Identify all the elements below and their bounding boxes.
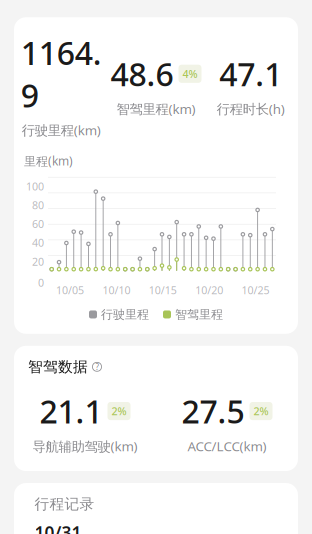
staticText: 10/15 xyxy=(149,283,177,297)
staticText: 智驾里程(km) xyxy=(116,100,195,118)
staticText: 里程(km) xyxy=(24,153,73,169)
staticText: 0 xyxy=(38,275,44,290)
staticText: 48.6 xyxy=(110,52,173,95)
staticText: 1164.9 xyxy=(21,31,102,116)
staticText: 10/20 xyxy=(195,283,223,297)
button[interactable]: About assisted driving data xyxy=(92,362,102,372)
staticText: 智驾数据 xyxy=(28,358,88,376)
staticText: 60 xyxy=(32,217,44,231)
staticText: 10/25 xyxy=(242,283,270,297)
staticText: 80 xyxy=(32,198,44,212)
staticText: 4% xyxy=(182,67,197,81)
staticText: 47.1 xyxy=(219,52,282,95)
staticText: 2% xyxy=(253,404,268,418)
staticText: 27.5 xyxy=(181,390,244,432)
staticText: 行驶里程(km) xyxy=(22,121,101,139)
staticText: 20 xyxy=(32,254,44,269)
staticText: 导航辅助驾驶(km) xyxy=(32,437,137,455)
staticText: 10/10 xyxy=(102,283,130,297)
staticText: 21.1 xyxy=(39,390,102,432)
staticText: 10/05 xyxy=(56,283,84,297)
staticText: ? xyxy=(95,361,98,372)
staticText: 行程记录 xyxy=(34,495,94,513)
staticText: 行程时长(h) xyxy=(217,100,285,118)
staticText: 40 xyxy=(32,236,44,250)
staticText: ACC/LCC(km) xyxy=(187,437,266,455)
staticText: 2% xyxy=(111,404,126,418)
staticText: 10/31 xyxy=(34,521,81,534)
staticText: 行驶里程 xyxy=(101,307,149,322)
staticText: 智驾里程 xyxy=(175,307,223,322)
staticText: 100 xyxy=(26,179,44,193)
